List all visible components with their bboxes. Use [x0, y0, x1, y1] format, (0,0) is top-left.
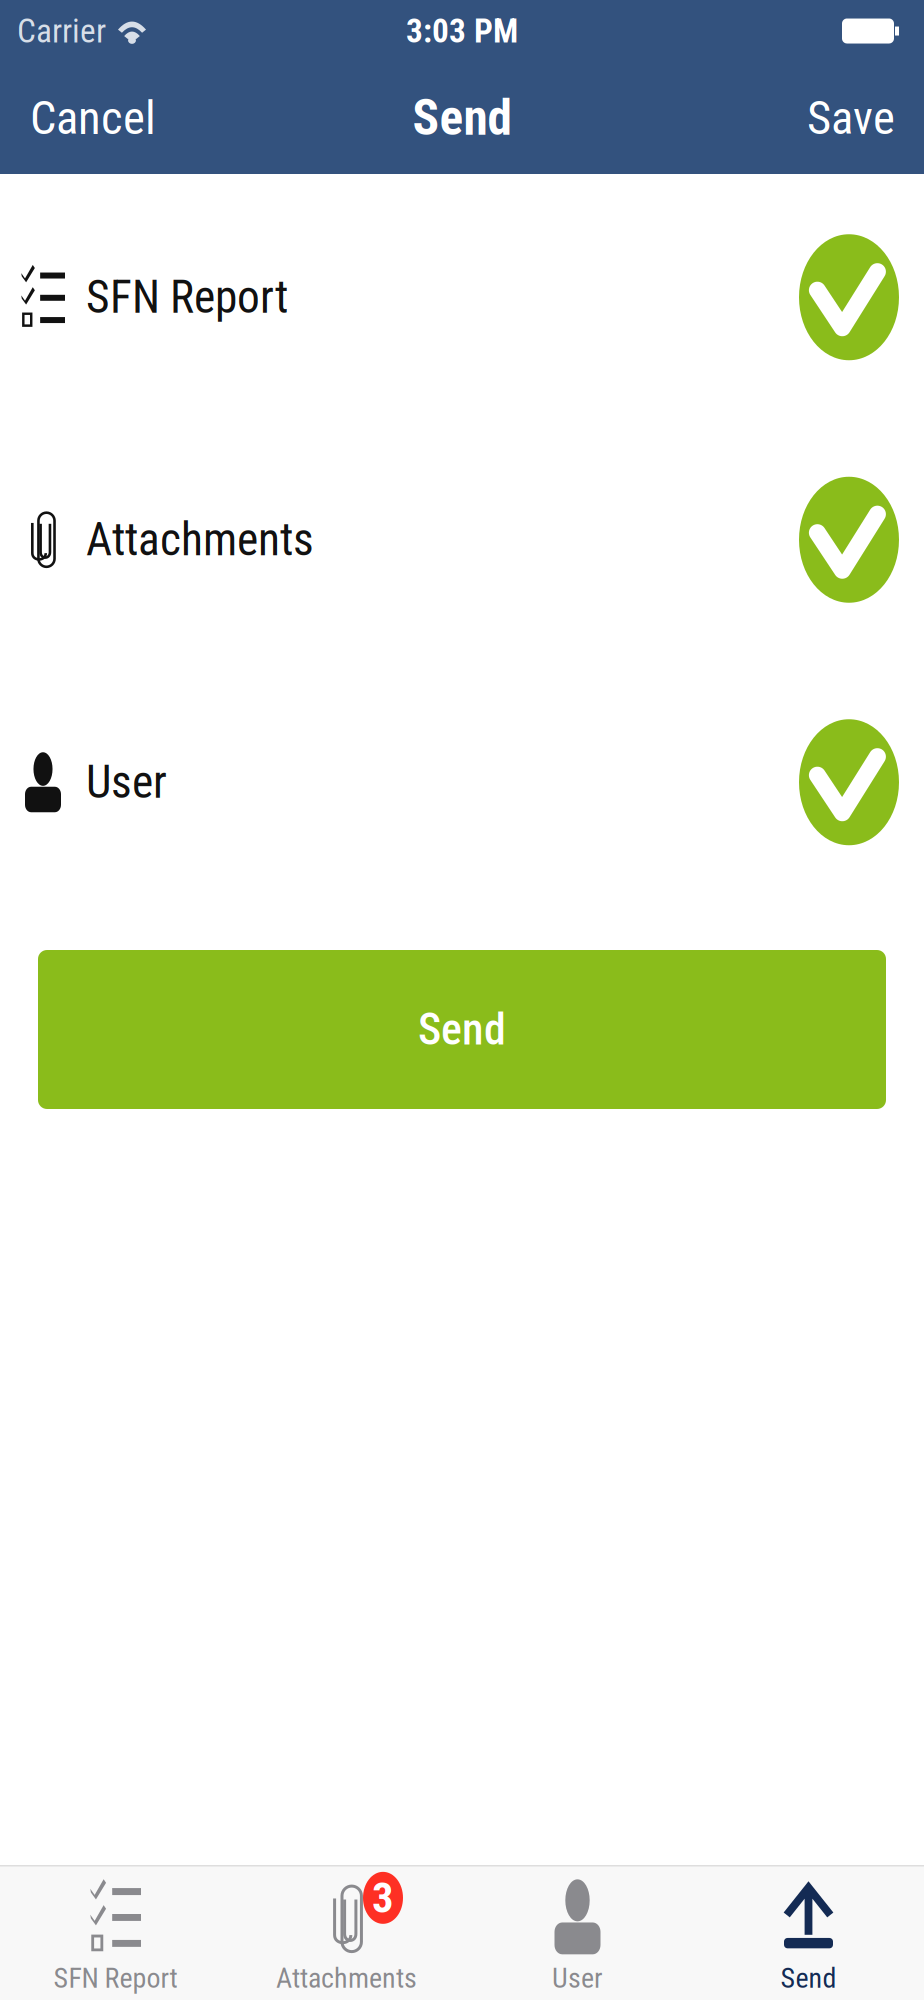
button[interactable]: Attachments — [0, 418, 924, 661]
staticText: Cancel — [30, 91, 156, 145]
button[interactable]: User — [0, 661, 924, 903]
button[interactable]: Send — [38, 950, 886, 1109]
button[interactable]: Send — [693, 1866, 924, 2000]
staticText: Attachments — [276, 1962, 417, 1995]
staticText: Save — [807, 91, 895, 145]
button[interactable]: User — [462, 1866, 693, 2000]
staticText: Send — [780, 1962, 836, 1995]
button[interactable]: Cancel — [0, 62, 178, 174]
staticText: Attachments — [86, 513, 314, 566]
staticText: User — [86, 756, 167, 809]
staticText: Send — [418, 1004, 506, 1055]
staticText: SFN Report — [86, 271, 288, 324]
staticText: 3:03 PM — [406, 11, 518, 51]
button[interactable]: Save — [785, 62, 924, 174]
staticText: SFN Report — [53, 1962, 177, 1995]
button[interactable]: SFN Report — [0, 176, 924, 418]
button[interactable]: SFN Report — [0, 1866, 231, 2000]
staticText: Send — [412, 89, 511, 147]
staticText: 3 — [372, 1873, 394, 1923]
staticText: User — [552, 1962, 603, 1995]
staticText: Carrier — [17, 11, 106, 51]
button[interactable]: 3 — [231, 1866, 462, 2000]
